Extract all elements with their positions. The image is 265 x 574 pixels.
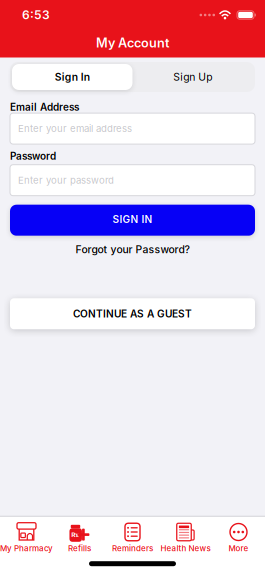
button[interactable]: Health News (159, 522, 212, 553)
button[interactable]: Reminders (106, 522, 159, 553)
staticText: SIGN IN (112, 213, 152, 225)
button[interactable]: Forgot your Password? (75, 243, 189, 256)
button[interactable]: Rx (53, 522, 106, 553)
staticText: Enter your password (18, 174, 114, 186)
staticText: Sign Up (173, 71, 212, 83)
staticText: Enter your email address (18, 123, 132, 134)
staticText: Sign In (55, 71, 90, 83)
staticText: Health News (160, 543, 210, 553)
staticText: My Account (96, 35, 169, 50)
staticText: 6:53 (22, 8, 50, 22)
button[interactable]: More (212, 522, 265, 553)
staticText: Reminders (112, 543, 153, 553)
staticText: Forgot your Password? (75, 243, 189, 256)
staticText: My Pharmacy (0, 543, 53, 553)
staticText: CONTINUE AS A GUEST (73, 308, 192, 320)
button[interactable]: CONTINUE AS A GUEST (10, 298, 255, 329)
button[interactable]: Sign Up (132, 64, 253, 90)
button[interactable]: SIGN IN (10, 205, 255, 236)
staticText: Email Address (10, 101, 79, 113)
staticText: Rx (71, 531, 79, 539)
button[interactable]: Sign In (12, 64, 132, 90)
button[interactable]: My Pharmacy (0, 522, 53, 553)
staticText: More (228, 543, 248, 553)
staticText: Refills (68, 543, 91, 553)
staticText: Password (10, 150, 56, 162)
